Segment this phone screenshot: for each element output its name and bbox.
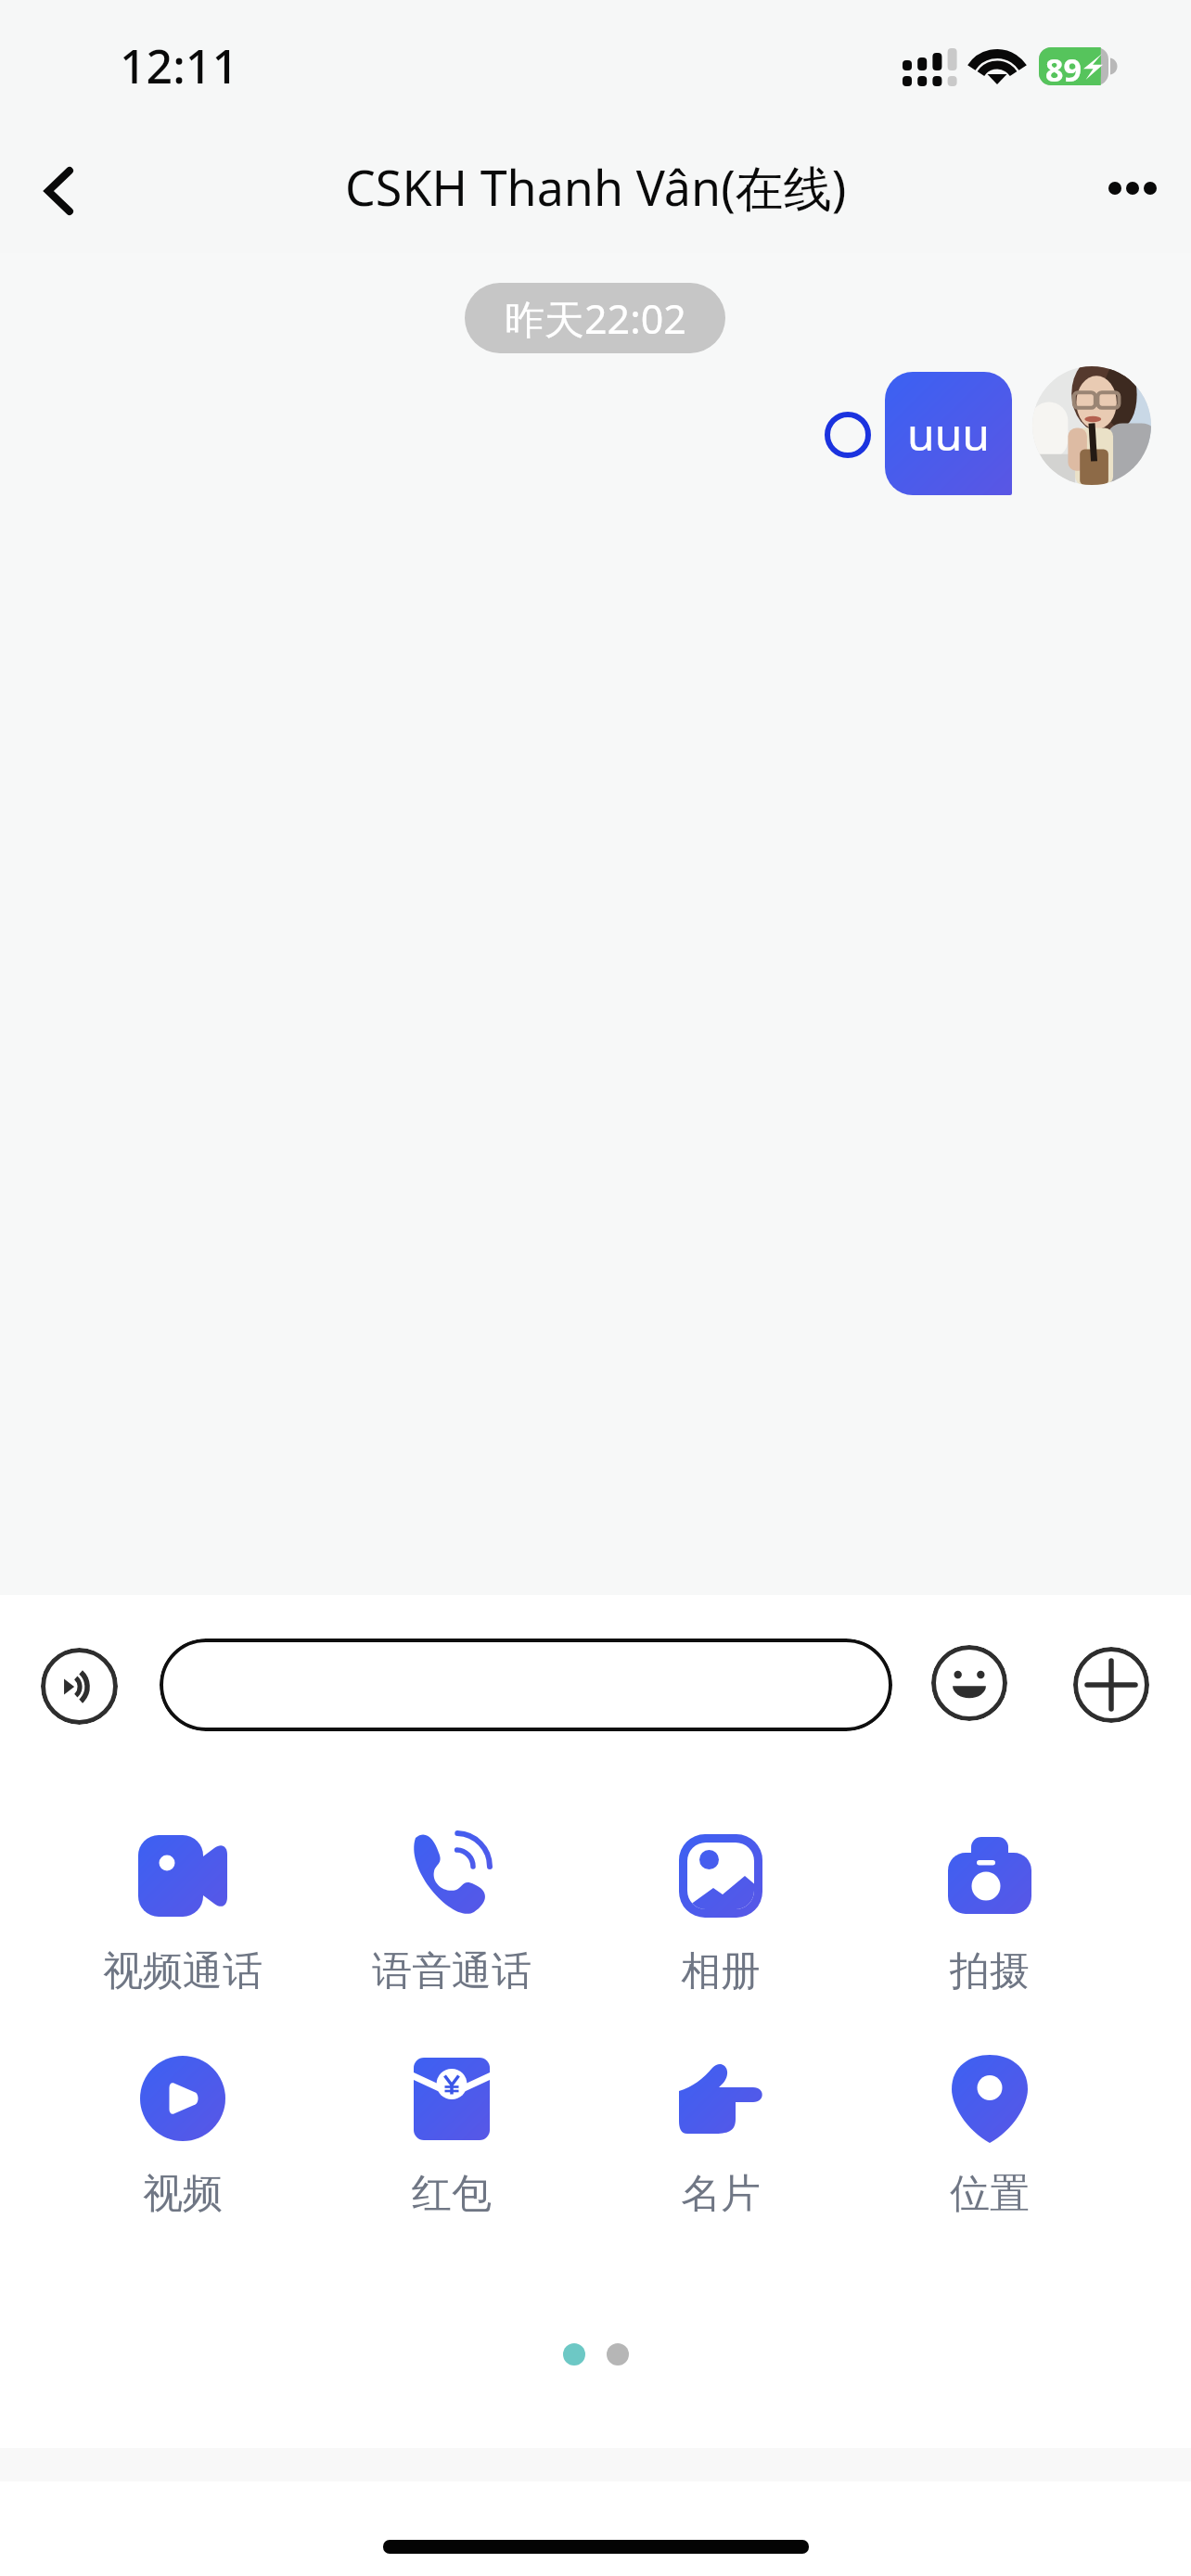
- staticText: 视频: [143, 2169, 223, 2219]
- staticText: 红包: [412, 2169, 492, 2219]
- button[interactable]: 名片: [586, 2052, 855, 2219]
- button[interactable]: 位置: [855, 2052, 1124, 2219]
- staticText: 语音通话: [372, 1946, 531, 1996]
- button[interactable]: 相册: [586, 1830, 855, 1996]
- button[interactable]: 红包: [317, 2052, 586, 2219]
- button[interactable]: More actions: [1073, 1647, 1149, 1723]
- button[interactable]: 拍摄: [855, 1830, 1124, 1996]
- staticText: 12:11: [120, 34, 238, 97]
- staticText: 89: [1045, 48, 1082, 91]
- button[interactable]: 视频: [48, 2052, 317, 2219]
- button[interactable]: Emoji: [931, 1645, 1007, 1721]
- button[interactable]: 视频通话: [48, 1830, 317, 1996]
- button[interactable]: 语音通话: [317, 1830, 586, 1996]
- button[interactable]: Voice message: [41, 1648, 118, 1725]
- staticText: 视频通话: [103, 1946, 263, 1996]
- button[interactable]: Back: [12, 145, 105, 237]
- staticText: CSKH Thanh Vân(在线): [345, 154, 847, 220]
- staticText: 位置: [950, 2169, 1030, 2219]
- staticText: 昨天22:02: [505, 291, 686, 346]
- staticText: uuu: [907, 403, 990, 464]
- button[interactable]: Profile picture: [1032, 366, 1151, 485]
- button[interactable]: uuu: [885, 372, 1012, 495]
- staticText: 相册: [681, 1946, 761, 1996]
- button[interactable]: Message input: [160, 1639, 892, 1731]
- staticText: 拍摄: [950, 1946, 1030, 1996]
- staticText: 名片: [681, 2169, 761, 2219]
- button[interactable]: More options: [1086, 142, 1179, 235]
